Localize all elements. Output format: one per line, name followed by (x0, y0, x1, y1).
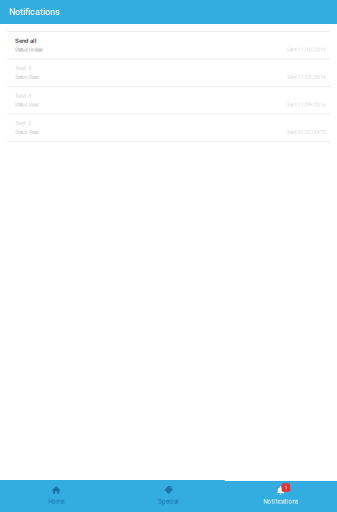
staticText: Status: Unread (15, 47, 43, 52)
staticText: Test 3 (15, 92, 31, 99)
staticText: Sent: 01/01/1970 (287, 130, 326, 135)
button[interactable]: Send all (0, 32, 337, 59)
button[interactable]: Home (0, 480, 112, 512)
staticText: Test 2 (15, 119, 31, 127)
staticText: Notifications (9, 7, 60, 17)
staticText: Home (48, 498, 64, 505)
staticText: 1 (284, 484, 287, 491)
button[interactable]: Special (112, 480, 225, 512)
staticText: Sent: 11/09/2016 (287, 75, 326, 80)
staticText: Send all (15, 37, 37, 44)
staticText: Status: Read (15, 130, 39, 135)
staticText: Sent: 11/09/2016 (287, 102, 326, 107)
staticText: Status: Read (15, 75, 39, 80)
button[interactable]: Test 3 (0, 87, 337, 114)
button[interactable]: Test 3 (0, 59, 337, 87)
button[interactable]: Test 2 (0, 114, 337, 142)
staticText: Special (158, 498, 179, 505)
staticText: Notifications (263, 498, 298, 505)
staticText: Status: Read (15, 102, 39, 107)
staticText: Sent: 11/10/2016 (287, 47, 326, 52)
button[interactable]: Notifications (225, 480, 337, 512)
staticText: Test 3 (15, 64, 31, 72)
